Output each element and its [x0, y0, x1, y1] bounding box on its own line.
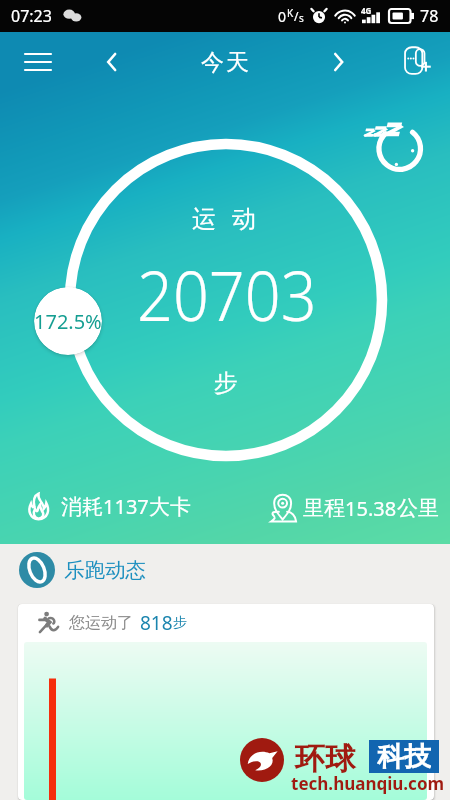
staticText: 环球: [295, 740, 355, 778]
staticText: 4G: [361, 5, 372, 16]
button[interactable]: 172.5%: [34, 287, 102, 355]
button[interactable]: 今天: [180, 40, 270, 85]
staticText: 0: [278, 7, 287, 26]
staticText: /: [294, 8, 299, 24]
staticText: 科技: [377, 740, 431, 773]
button[interactable]: Add device: [390, 34, 446, 90]
button[interactable]: 里程: [266, 492, 439, 524]
button[interactable]: 消耗: [24, 492, 191, 521]
staticText: 步: [214, 368, 238, 398]
staticText: K: [287, 6, 294, 20]
staticText: 07:23: [11, 5, 52, 27]
staticText: 乐跑动态: [64, 557, 146, 583]
button[interactable]: Next day: [317, 41, 359, 83]
staticText: 公里: [397, 495, 439, 521]
staticText: 运动: [184, 204, 264, 234]
staticText: 里程: [303, 495, 345, 521]
staticText: 大卡: [149, 494, 191, 520]
staticText: 78: [420, 5, 439, 27]
staticText: 今天: [200, 48, 250, 77]
staticText: 818: [140, 610, 173, 636]
staticText: tech.huanqiu.com: [291, 772, 445, 795]
staticText: 您运动了: [69, 613, 133, 633]
button[interactable]: Menu: [10, 34, 66, 90]
button[interactable]: Sleep: [361, 108, 425, 172]
staticText: 15.38: [345, 495, 397, 522]
staticText: 1137: [103, 493, 149, 520]
staticText: 20703: [137, 248, 317, 341]
staticText: s: [299, 11, 304, 25]
staticText: 步: [173, 614, 187, 632]
button[interactable]: 乐跑动态: [0, 544, 450, 596]
staticText: 消耗: [61, 494, 103, 520]
button[interactable]: Previous day: [90, 41, 132, 83]
button[interactable]: 您运动了: [18, 604, 434, 800]
staticText: 172.5%: [34, 308, 102, 335]
